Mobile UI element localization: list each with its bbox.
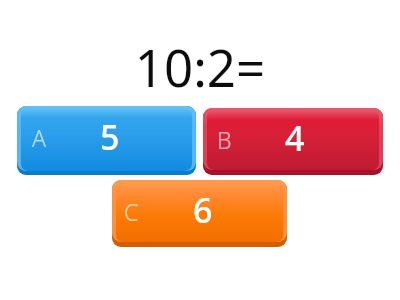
staticText: 5: [100, 114, 120, 160]
button[interactable]: Answer C: 6: [112, 180, 287, 247]
staticText: C: [124, 196, 139, 227]
staticText: B: [217, 124, 232, 155]
staticText: 10:2=: [0, 32, 400, 300]
button[interactable]: Answer B: 4: [203, 108, 383, 175]
button[interactable]: Answer A: 5: [17, 106, 196, 175]
staticText: A: [32, 122, 46, 153]
staticText: 4: [285, 115, 305, 161]
staticText: 6: [193, 187, 213, 233]
